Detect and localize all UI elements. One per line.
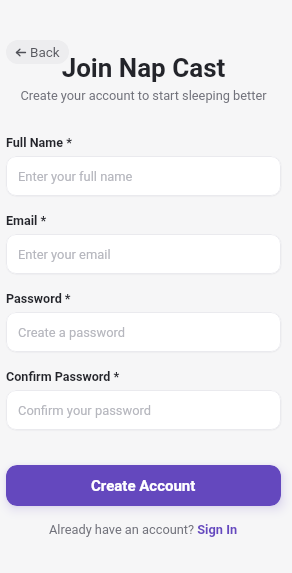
staticText: Full Name * — [6, 135, 72, 150]
staticText: Confirm Password * — [6, 369, 120, 384]
button[interactable]: Already have an account? Sign In — [49, 522, 238, 537]
staticText: Create Account — [91, 477, 196, 495]
staticText: Join Nap Cast — [6, 53, 281, 83]
staticText: Confirm your password — [18, 403, 152, 418]
button[interactable]: Create Account — [6, 465, 281, 506]
button[interactable]: Enter your full name — [6, 156, 281, 196]
staticText: Back — [30, 44, 60, 60]
staticText: Create a password — [18, 325, 126, 340]
staticText: Create your account to start sleeping be… — [6, 88, 281, 103]
staticText: Password * — [6, 291, 71, 306]
button[interactable]: Back — [6, 40, 69, 64]
staticText: Enter your full name — [18, 169, 133, 184]
button[interactable]: Enter your email — [6, 234, 281, 274]
staticText: Email * — [6, 213, 47, 228]
other: Back — [15, 47, 26, 58]
button[interactable]: Create a password — [6, 312, 281, 352]
staticText: Enter your email — [18, 247, 111, 262]
button[interactable]: Confirm your password — [6, 390, 281, 430]
